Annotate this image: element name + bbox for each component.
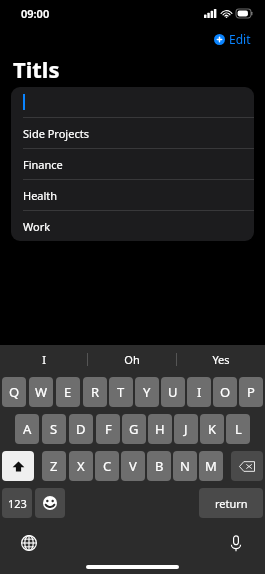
button[interactable]: Emoji [35, 488, 65, 518]
button[interactable]: H [148, 414, 172, 444]
button[interactable]: Side Projects [11, 118, 254, 148]
staticText: X [77, 457, 85, 475]
button[interactable]: U [161, 377, 185, 407]
button[interactable]: Change keyboard language [18, 532, 40, 554]
staticText: F [105, 420, 112, 438]
staticText: V [129, 457, 137, 475]
staticText: H [155, 420, 165, 438]
staticText: 09:00 [21, 6, 50, 21]
staticText: Health [23, 188, 58, 203]
staticText: G [129, 420, 139, 438]
staticText: Titls [13, 54, 60, 84]
staticText: W [35, 383, 48, 401]
button[interactable]: D [69, 414, 93, 444]
button[interactable]: Z [42, 451, 66, 481]
button[interactable]: Health [11, 180, 254, 210]
button[interactable]: return [199, 488, 263, 518]
staticText: T [117, 383, 125, 401]
button[interactable]: Dictation [225, 532, 247, 554]
button[interactable]: V [121, 451, 145, 481]
button[interactable]: I [0, 345, 87, 373]
staticText: J [184, 420, 188, 438]
button[interactable]: R [83, 377, 107, 407]
staticText: N [180, 457, 190, 475]
staticText: E [64, 383, 72, 401]
button[interactable]: J [174, 414, 198, 444]
button[interactable]: O [213, 377, 237, 407]
button[interactable]: A [15, 414, 39, 444]
staticText: I [197, 383, 202, 401]
button[interactable]: N [173, 451, 197, 481]
button[interactable]: Backspace [231, 451, 263, 481]
staticText: K [208, 420, 217, 438]
staticText: M [205, 457, 217, 475]
button[interactable]: G [122, 414, 146, 444]
button[interactable]: W [29, 377, 53, 407]
button[interactable]: X [69, 451, 93, 481]
button[interactable]: Y [135, 377, 159, 407]
staticText: I [42, 352, 46, 367]
button[interactable]: P [239, 377, 263, 407]
button[interactable]: Work [11, 211, 254, 241]
staticText: Oh [124, 352, 140, 367]
staticText: 123 [8, 496, 27, 511]
button[interactable]: 123 [2, 488, 32, 518]
button[interactable]: L [226, 414, 250, 444]
button[interactable]: K [200, 414, 224, 444]
staticText: Finance [23, 157, 63, 172]
staticText: Yes [212, 352, 230, 367]
staticText: Side Projects [23, 126, 89, 141]
staticText: S [50, 420, 58, 438]
staticText: A [23, 420, 32, 438]
button[interactable]: S [42, 414, 66, 444]
button[interactable]: I [187, 377, 211, 407]
staticText: R [91, 383, 100, 401]
staticText: Q [9, 383, 20, 401]
button[interactable] [11, 87, 254, 117]
staticText: D [76, 420, 86, 438]
staticText: return [215, 496, 248, 511]
staticText: O [220, 383, 231, 401]
button[interactable]: Edit [214, 31, 251, 47]
button[interactable]: T [109, 377, 133, 407]
button[interactable]: Q [2, 377, 26, 407]
button[interactable]: M [199, 451, 223, 481]
staticText: Work [23, 219, 51, 234]
staticText: C [103, 457, 112, 475]
staticText: P [247, 383, 255, 401]
button[interactable]: B [147, 451, 171, 481]
button[interactable]: Oh [88, 345, 176, 373]
staticText: Z [50, 457, 58, 475]
staticText: L [235, 420, 242, 438]
button[interactable]: Yes [177, 345, 265, 373]
button[interactable]: F [96, 414, 120, 444]
button[interactable]: E [56, 377, 80, 407]
button[interactable]: Finance [11, 149, 254, 179]
staticText: Edit [229, 31, 251, 47]
button[interactable]: C [95, 451, 119, 481]
staticText: B [155, 457, 164, 475]
button[interactable]: Shift [2, 451, 34, 481]
staticText: U [168, 383, 178, 401]
staticText: Y [143, 383, 151, 401]
